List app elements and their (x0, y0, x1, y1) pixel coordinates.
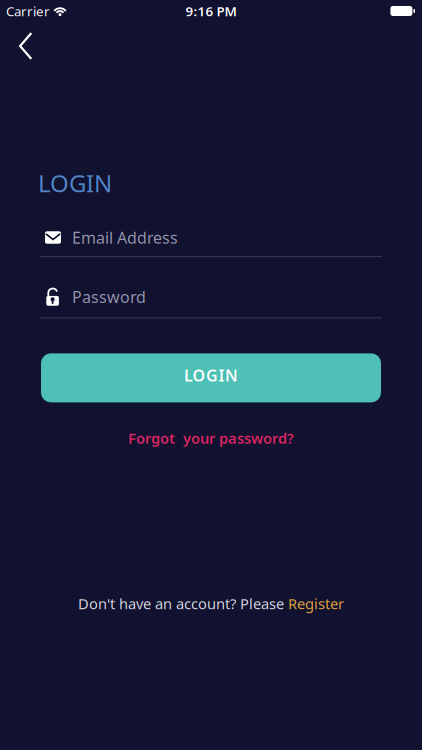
button[interactable]: LOGIN (41, 353, 381, 402)
staticText: Register (288, 594, 344, 613)
staticText: Carrier (6, 2, 50, 20)
staticText: 9:16 PM (185, 2, 236, 20)
button[interactable]: Forgot your password? (128, 428, 294, 448)
staticText: LOGIN (38, 167, 112, 199)
button[interactable]: Register (288, 594, 344, 613)
staticText: Email Address (72, 227, 178, 248)
staticText: Password (72, 286, 146, 307)
staticText: LOGIN (184, 365, 238, 386)
button[interactable]: Back (0, 21, 32, 60)
staticText: Don't have an account? Please (78, 594, 288, 613)
staticText: Forgot your password? (128, 428, 294, 448)
